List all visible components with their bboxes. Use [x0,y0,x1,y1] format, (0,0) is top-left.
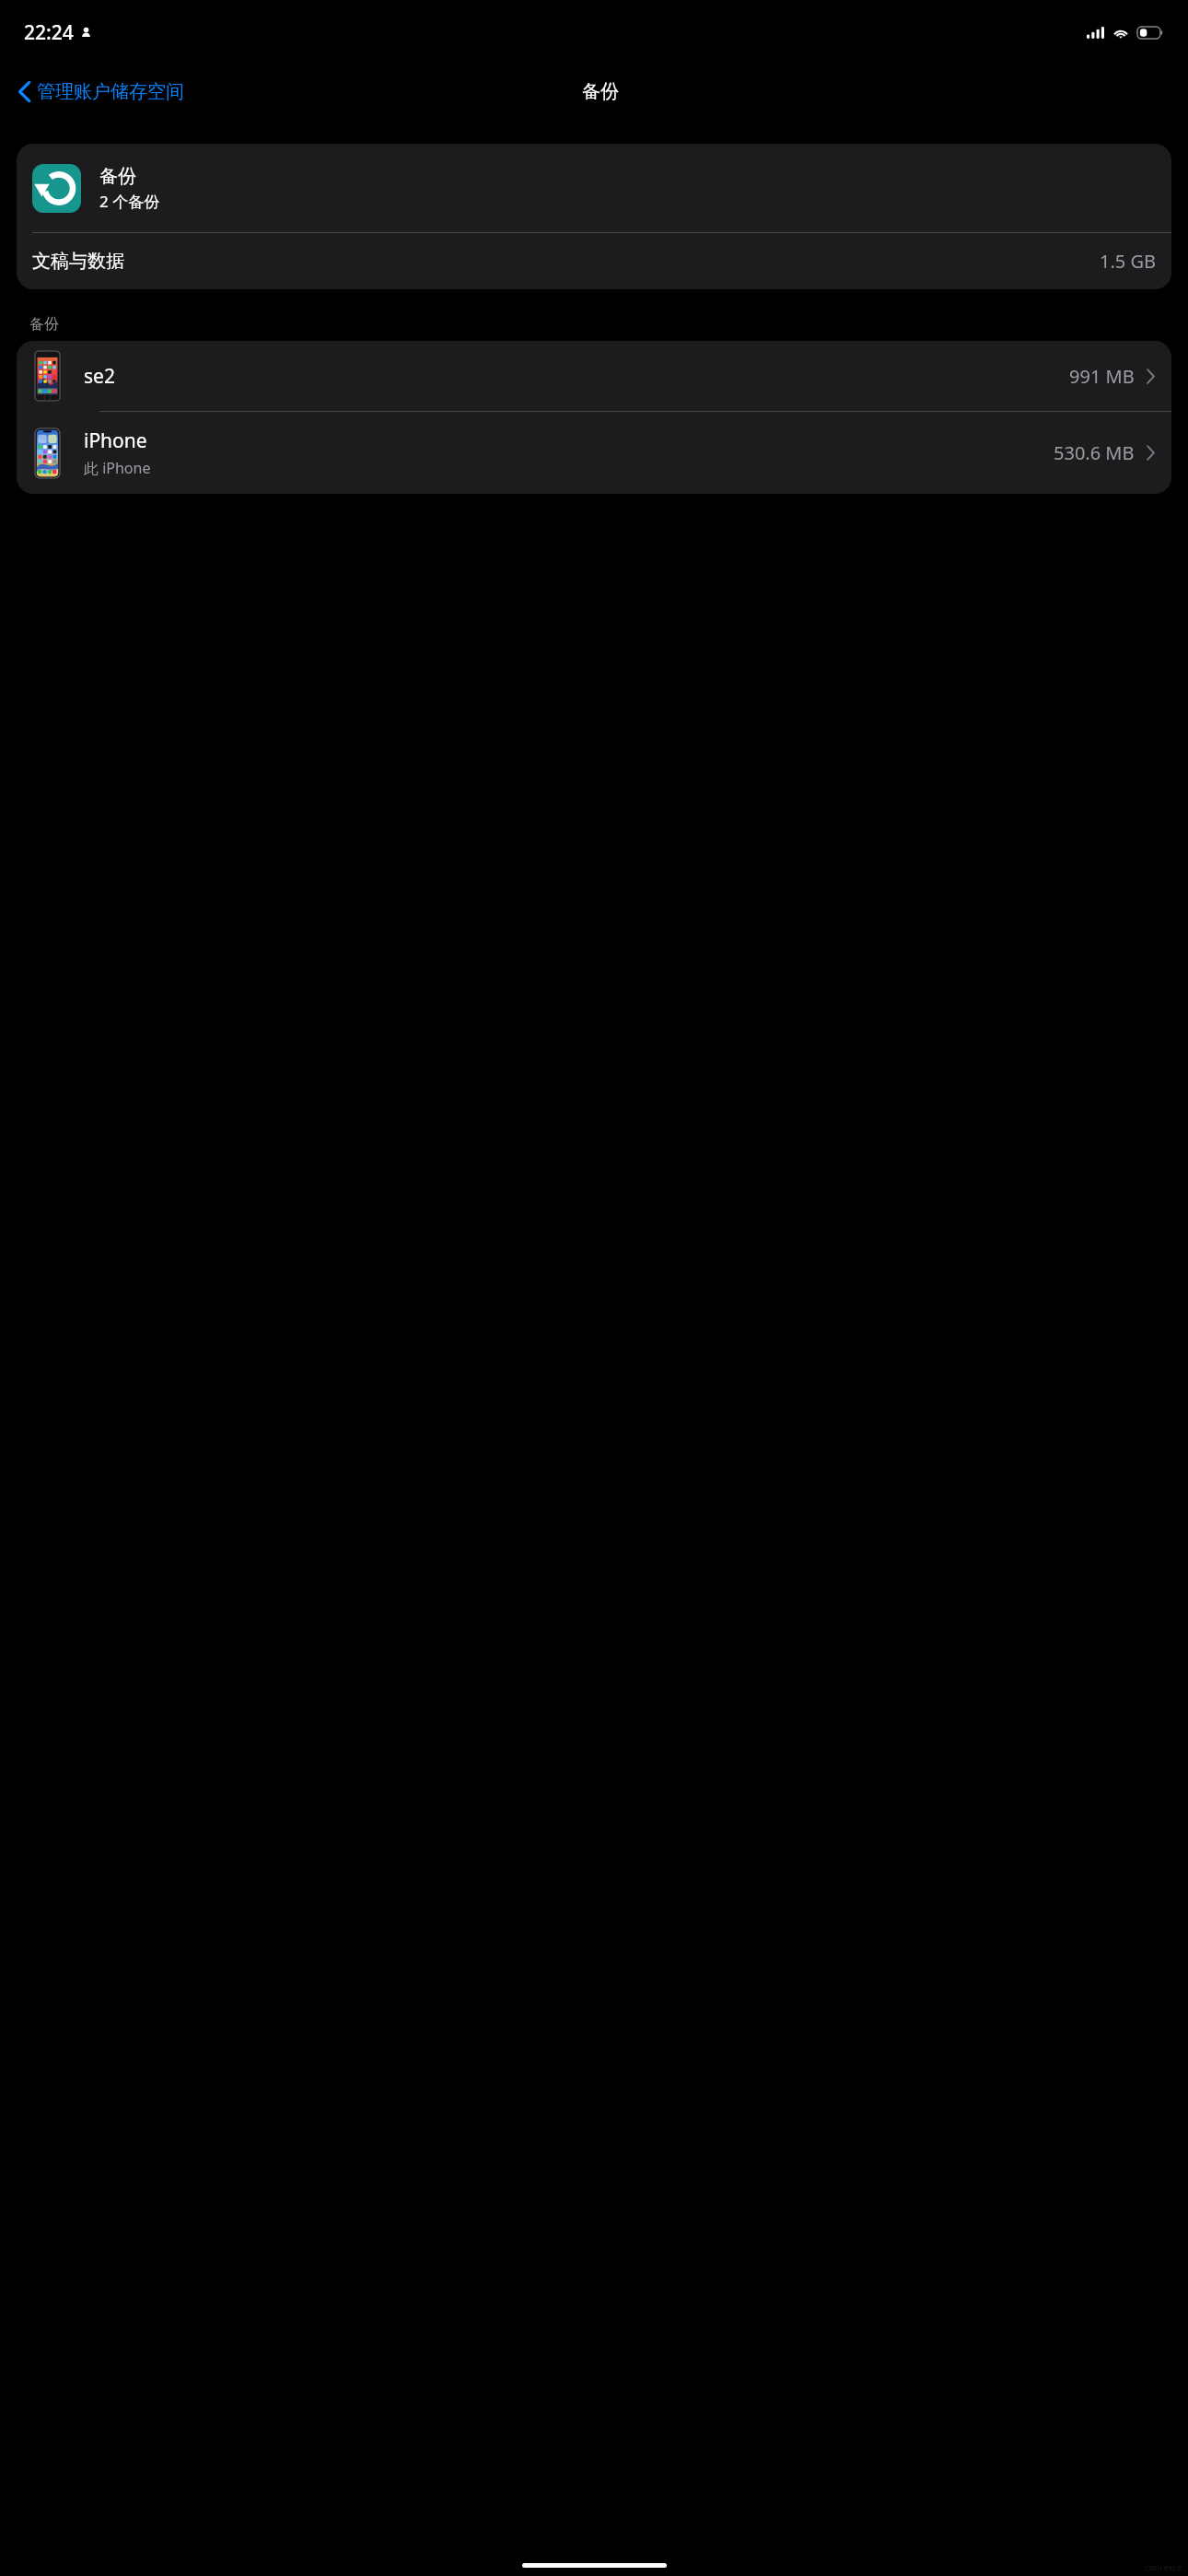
staticText: 备份 [29,315,59,334]
staticText: 文稿与数据 [32,250,124,273]
staticText: 22:24 [24,19,74,46]
staticText: 2 个备份 [99,191,160,212]
staticText: iPhone [84,427,147,454]
button[interactable]: iPhone [17,412,1171,494]
button[interactable]: se2 [17,341,1171,411]
staticText: 此 iPhone [84,458,151,478]
staticText: 管理账户储存空间 [37,80,184,103]
staticText: se2 [84,363,115,390]
staticText: 备份 [99,165,136,188]
button[interactable]: 文稿与数据 [17,233,1171,289]
staticText: 991 MB [1069,364,1135,389]
button[interactable]: 管理账户储存空间 [13,75,190,109]
staticText: 备份 [582,80,619,103]
staticText: CSDN @锦天 [1145,2564,1182,2573]
button[interactable]: 备份 [17,144,1171,232]
staticText: 1.5 GB [1100,249,1156,274]
staticText: 530.6 MB [1054,440,1135,465]
